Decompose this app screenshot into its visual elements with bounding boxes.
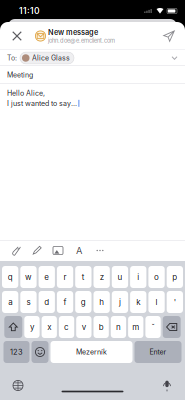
staticText: Hello Alice, [7,89,45,97]
button[interactable]: Mezerník [50,341,132,363]
button[interactable]: Emoji [31,341,48,363]
staticText: Meeting [7,71,33,79]
staticText: b [99,322,104,332]
staticText: ' [174,297,176,307]
staticText: k [136,297,140,307]
button[interactable]: t [75,266,91,288]
staticText: m [132,322,139,332]
staticText: x [47,322,51,332]
button[interactable]: c [59,316,74,338]
button[interactable]: ˇ [145,316,161,338]
staticText: e [44,272,49,282]
button[interactable]: q [2,266,18,288]
staticText: f [63,297,66,307]
button[interactable]: Insert photo [52,244,64,256]
button[interactable]: v [76,316,91,338]
button[interactable]: k [130,291,146,313]
staticText: g [81,297,86,307]
staticText: j [119,297,121,307]
staticText: o [154,272,159,282]
staticText: z [100,272,104,282]
button[interactable]: Attach file [10,244,22,256]
button[interactable]: e [39,266,55,288]
button[interactable]: s [20,291,37,313]
staticText: Alice Glass [32,54,70,62]
staticText: john.doe@e.emclient.com [48,37,115,44]
staticText: t [82,272,85,282]
button[interactable]: w [20,266,37,288]
button[interactable]: To: [0,50,185,66]
button[interactable]: Draw [31,244,43,256]
button[interactable]: 123 [3,341,29,363]
button[interactable]: n [111,316,126,338]
staticText: Enter [149,348,166,356]
button[interactable]: Text format [73,244,85,256]
staticText: A [76,245,82,256]
button[interactable]: y [24,316,40,338]
staticText: New message [48,28,98,37]
staticText: i [137,272,139,282]
button[interactable]: More [94,244,106,256]
staticText: c [64,322,69,332]
button[interactable]: ' [167,291,183,313]
button[interactable]: f [57,291,73,313]
button[interactable]: Close [6,25,28,47]
staticText: ˇ [152,322,155,332]
staticText: y [30,322,34,332]
button[interactable]: j [112,291,128,313]
staticText: a [8,297,12,307]
staticText: v [82,322,86,332]
button[interactable]: h [93,291,110,313]
button[interactable]: Next keyboard [7,377,29,393]
button[interactable]: Delete [163,316,181,338]
button[interactable]: Enter [134,341,181,363]
staticText: Mezerník [76,348,107,356]
staticText: I just wanted to say... [7,99,77,107]
button[interactable]: o [148,266,165,288]
staticText: l [155,297,157,307]
button[interactable]: l [148,291,165,313]
staticText: n [116,322,121,332]
button[interactable]: u [112,266,128,288]
staticText: p [172,272,177,282]
staticText: w [25,272,32,282]
button[interactable]: i [130,266,146,288]
button[interactable]: Send [157,25,181,47]
staticText: 123 [10,347,23,356]
staticText: To: [7,54,17,62]
staticText: h [99,297,104,307]
button[interactable]: a [2,291,18,313]
staticText: d [44,297,49,307]
button[interactable]: Meeting [0,66,185,84]
staticText: 11:10 [19,6,40,16]
button[interactable]: z [93,266,110,288]
button[interactable]: r [57,266,73,288]
staticText: s [26,297,30,307]
button[interactable]: Shift [4,316,22,338]
staticText: u [117,272,122,282]
button[interactable]: x [42,316,57,338]
button[interactable]: Dictate [156,377,178,393]
button[interactable]: p [167,266,183,288]
staticText: q [8,272,13,282]
button[interactable]: b [93,316,109,338]
button[interactable]: m [128,316,143,338]
button[interactable]: g [75,291,91,313]
button[interactable]: d [39,291,55,313]
staticText: r [63,272,66,282]
